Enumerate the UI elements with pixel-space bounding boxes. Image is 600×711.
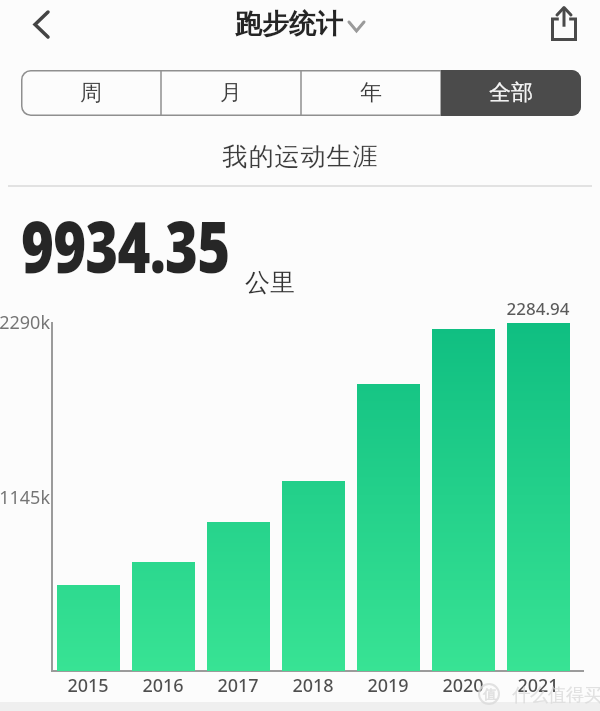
- staticText: 跑步统计: [235, 7, 343, 41]
- staticText: 全部: [489, 79, 533, 107]
- staticText: 什么值得买: [512, 684, 600, 707]
- button[interactable]: 月: [161, 70, 301, 116]
- staticText: 9934.35: [21, 197, 230, 294]
- staticText: 2021: [501, 673, 575, 698]
- staticText: 周: [80, 79, 102, 107]
- staticText: 公里: [245, 267, 295, 298]
- staticText: 2284.94: [493, 297, 583, 320]
- staticText: 值: [483, 686, 496, 702]
- button[interactable]: [544, 2, 584, 46]
- button[interactable]: [20, 2, 60, 46]
- staticText: 2015: [51, 673, 125, 698]
- staticText: 2017: [201, 673, 275, 698]
- button[interactable]: 周: [21, 70, 161, 116]
- staticText: 2019: [351, 673, 425, 698]
- button[interactable]: 年: [301, 70, 441, 116]
- staticText: 2290k: [0, 310, 50, 335]
- button[interactable]: 跑步统计: [235, 7, 358, 41]
- staticText: 2016: [126, 673, 200, 698]
- button[interactable]: 全部: [441, 70, 581, 116]
- staticText: 年: [360, 79, 382, 107]
- staticText: 2018: [276, 673, 350, 698]
- staticText: 月: [220, 79, 242, 107]
- staticText: 2020: [426, 673, 500, 698]
- staticText: 1145k: [0, 485, 50, 510]
- staticText: 我的运动生涯: [222, 141, 378, 172]
